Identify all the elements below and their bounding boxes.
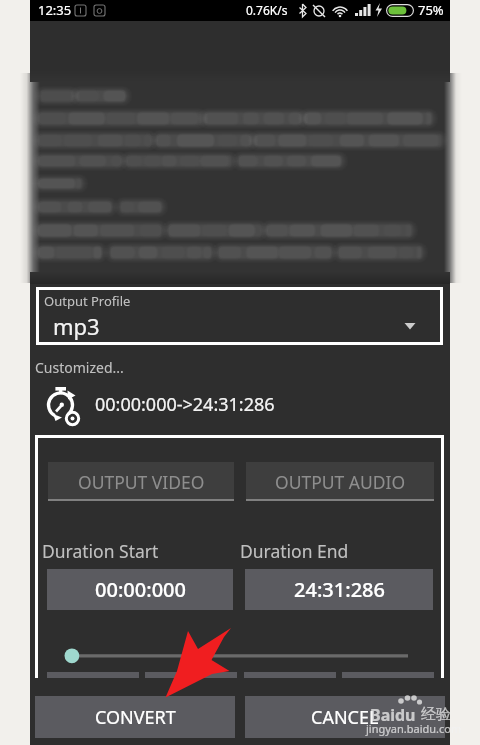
staticText: mp3	[53, 311, 100, 341]
button[interactable]: CANCEL	[245, 696, 445, 738]
other: Trim duration	[36, 384, 336, 422]
button[interactable]: CONVERT	[35, 696, 235, 738]
staticText: CONVERT	[95, 705, 176, 730]
staticText: 经验	[421, 705, 451, 724]
button[interactable]: Trim duration	[36, 384, 336, 422]
button[interactable]: OUTPUT AUDIO	[246, 462, 434, 501]
staticText: OUTPUT VIDEO	[78, 470, 205, 494]
staticText: 00:00:000	[95, 576, 186, 603]
staticText: Baidu	[370, 704, 416, 726]
staticText: Duration Start	[42, 539, 159, 563]
staticText: Customized...	[35, 358, 124, 377]
button[interactable]: 24:31:286	[245, 569, 433, 610]
staticText: 0.76K/s	[246, 2, 288, 18]
button[interactable]: 00:00:000	[47, 569, 233, 610]
staticText: 12:35	[38, 1, 72, 19]
staticText: Duration End	[240, 539, 349, 563]
staticText: jingyan.baidu.com	[366, 721, 462, 736]
staticText: 00:00:000->24:31:286	[95, 392, 275, 417]
button[interactable]: OUTPUT VIDEO	[48, 462, 234, 501]
staticText: 24:31:286	[294, 576, 385, 603]
staticText: Output Profile	[44, 292, 131, 310]
staticText: OUTPUT AUDIO	[275, 470, 406, 494]
staticText: 75%	[418, 1, 444, 19]
button[interactable]: Output Profile	[36, 287, 443, 345]
staticText: CANCEL	[311, 705, 379, 730]
